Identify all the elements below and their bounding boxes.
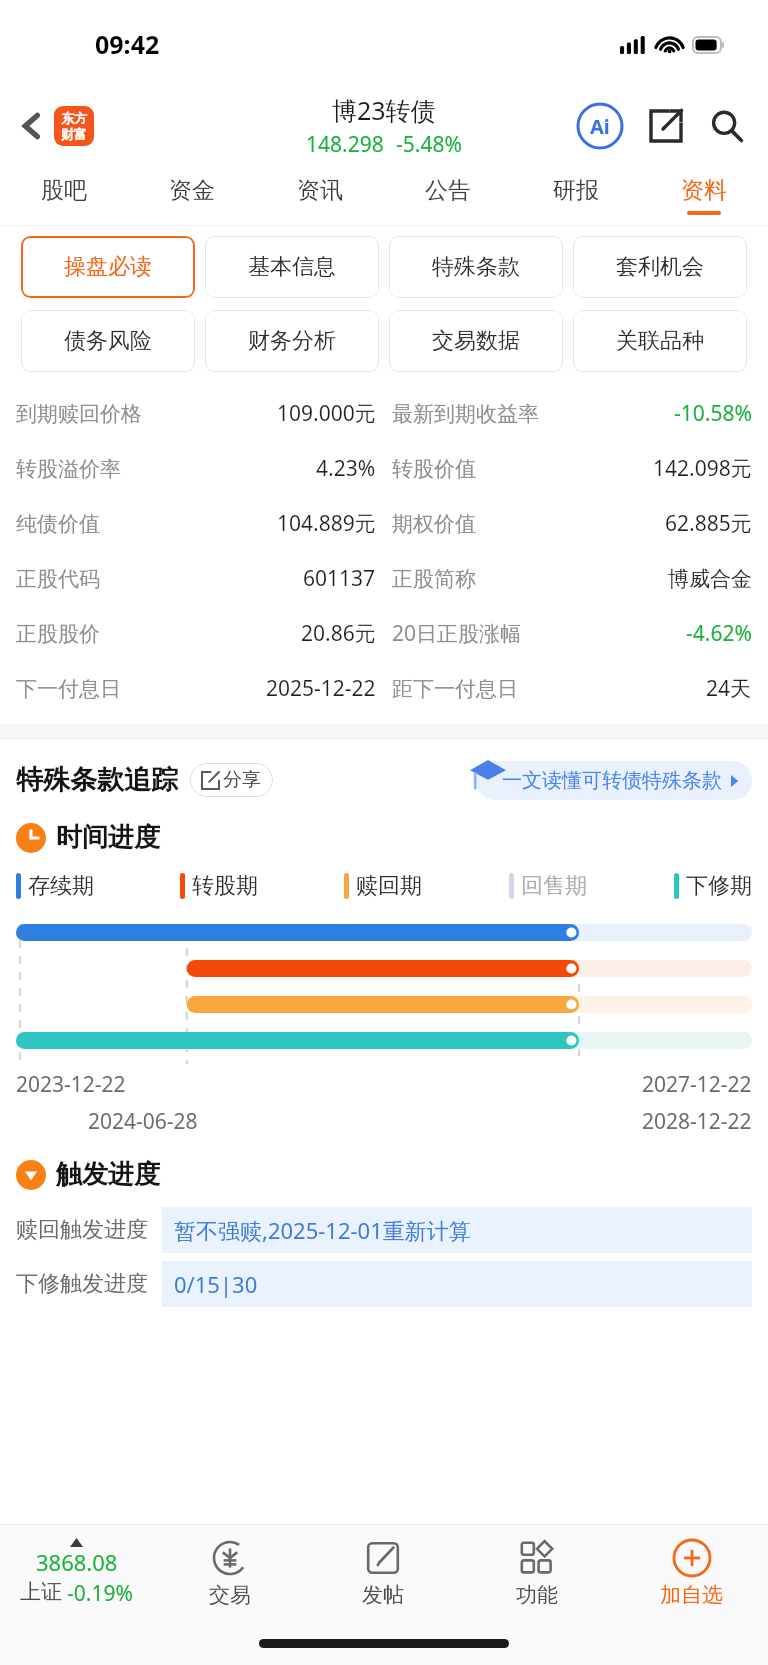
staticText: -4.62%: [686, 619, 752, 648]
staticText: 分享: [223, 768, 261, 792]
staticText: 特殊条款追踪: [16, 763, 178, 797]
button[interactable]: 研报: [512, 164, 640, 226]
button[interactable]: AI assistant: [576, 102, 624, 150]
button[interactable]: Share: [644, 104, 688, 148]
staticText: 4.23%: [316, 454, 376, 483]
staticText: 到期赎回价格: [16, 401, 142, 427]
button[interactable]: 一文读懂可转债特殊条款: [476, 761, 752, 800]
staticText: 转股期: [192, 872, 258, 900]
staticText: 特殊条款: [432, 253, 520, 281]
staticText: 操盘必读: [64, 253, 152, 281]
staticText: 148.298: [306, 130, 384, 159]
staticText: 发帖: [362, 1582, 404, 1608]
button[interactable]: 功能: [460, 1525, 614, 1621]
staticText: 最新到期收益率: [392, 401, 539, 427]
staticText: 转股溢价率: [16, 456, 121, 482]
staticText: 套利机会: [616, 253, 704, 281]
staticText: 交易: [209, 1582, 251, 1608]
staticText: 公告: [425, 176, 471, 205]
staticText: 104.889元: [277, 509, 376, 538]
button[interactable]: 交易: [153, 1525, 306, 1621]
staticText: 股吧: [41, 176, 87, 205]
staticText: 3868.08: [36, 1547, 118, 1577]
staticText: 赎回期: [356, 872, 422, 900]
button[interactable]: 财务分析: [205, 310, 379, 372]
staticText: 东方: [61, 110, 87, 126]
staticText: 一文读懂可转债特殊条款: [502, 768, 722, 793]
staticText: -0.19%: [67, 1579, 133, 1608]
staticText: 加自选: [660, 1582, 723, 1608]
staticText: 09:42: [95, 27, 160, 61]
staticText: 期权价值: [392, 511, 476, 537]
staticText: 功能: [516, 1582, 558, 1608]
button[interactable]: 资讯: [256, 164, 384, 226]
staticText: 2024-06-28: [88, 1107, 198, 1136]
staticText: 博威合金: [668, 566, 752, 592]
button[interactable]: 分享: [190, 763, 273, 797]
button[interactable]: 加自选: [614, 1525, 768, 1621]
staticText: 下修触发进度: [16, 1270, 148, 1298]
staticText: 时间进度: [56, 821, 160, 854]
staticText: 2025-12-22: [266, 674, 376, 703]
staticText: 142.098元: [653, 454, 752, 483]
button[interactable]: 操盘必读: [21, 236, 195, 298]
button[interactable]: 发帖: [306, 1525, 460, 1621]
button[interactable]: 套利机会: [573, 236, 747, 298]
button[interactable]: 3868.08: [0, 1525, 153, 1621]
staticText: 触发进度: [56, 1158, 160, 1191]
button[interactable]: Back: [14, 100, 100, 152]
button[interactable]: Search: [704, 103, 750, 149]
staticText: 回售期: [521, 872, 587, 900]
button[interactable]: 债务风险: [21, 310, 195, 372]
staticText: 财富: [61, 126, 87, 142]
staticText: 博23转债: [332, 93, 436, 127]
staticText: 正股股价: [16, 621, 100, 647]
staticText: 债务风险: [64, 327, 152, 355]
staticText: 转股价值: [392, 456, 476, 482]
staticText: -10.58%: [674, 399, 752, 428]
staticText: 正股简称: [392, 566, 476, 592]
staticText: 存续期: [28, 872, 94, 900]
button[interactable]: 关联品种: [573, 310, 747, 372]
staticText: 下一付息日: [16, 676, 121, 702]
staticText: 纯债价值: [16, 511, 100, 537]
staticText: 下修期: [686, 872, 752, 900]
staticText: 0/15|30: [174, 1269, 258, 1299]
button[interactable]: 公告: [384, 164, 512, 226]
staticText: 财务分析: [248, 327, 336, 355]
staticText: Ai: [590, 113, 610, 140]
staticText: 资料: [681, 176, 727, 205]
staticText: -5.48%: [396, 130, 462, 159]
button[interactable]: 资金: [128, 164, 256, 226]
staticText: 2028-12-22: [642, 1107, 752, 1136]
button[interactable]: 资料: [640, 164, 768, 226]
staticText: 20.86元: [301, 619, 376, 648]
staticText: 上证: [20, 1579, 62, 1605]
button[interactable]: 股吧: [0, 164, 128, 226]
staticText: 暂不强赎,2025-12-01重新计算: [174, 1215, 471, 1245]
staticText: 资金: [169, 176, 215, 205]
button[interactable]: 交易数据: [389, 310, 563, 372]
staticText: 正股代码: [16, 566, 100, 592]
staticText: 关联品种: [616, 327, 704, 355]
staticText: 基本信息: [248, 253, 336, 281]
staticText: 资讯: [297, 176, 343, 205]
staticText: 2023-12-22: [16, 1070, 126, 1099]
staticText: 62.885元: [665, 509, 752, 538]
staticText: 2027-12-22: [642, 1070, 752, 1099]
staticText: 109.000元: [277, 399, 376, 428]
staticText: 20日正股涨幅: [392, 619, 522, 648]
staticText: 研报: [553, 176, 599, 205]
staticText: 601137: [303, 564, 376, 593]
staticText: 距下一付息日: [392, 676, 518, 702]
staticText: 赎回触发进度: [16, 1216, 148, 1244]
staticText: 24天: [706, 674, 752, 703]
button[interactable]: 基本信息: [205, 236, 379, 298]
staticText: 交易数据: [432, 327, 520, 355]
button[interactable]: 特殊条款: [389, 236, 563, 298]
